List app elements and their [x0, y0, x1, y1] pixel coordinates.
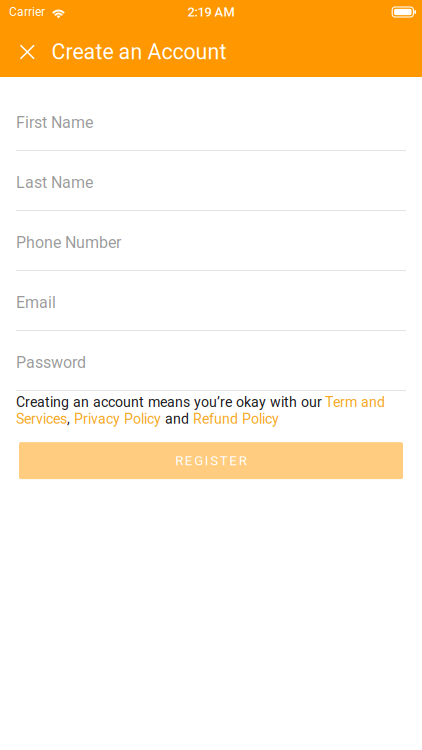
button[interactable]: Create an Account	[0, 27, 422, 77]
button[interactable]: REGISTER	[16, 442, 406, 479]
button[interactable]: Phone Number	[16, 211, 406, 271]
staticText: 2:19 AM	[187, 4, 234, 20]
staticText: REGISTER	[175, 453, 247, 468]
staticText: Password	[16, 353, 86, 372]
button[interactable]: Email	[16, 271, 406, 331]
staticText: First Name	[16, 113, 93, 132]
staticText: Phone Number	[16, 233, 121, 252]
button[interactable]: Password	[16, 331, 406, 391]
staticText: Email	[16, 293, 56, 312]
button[interactable]: Creating an account means you’re okay wi…	[16, 394, 406, 427]
staticText: Create an Account	[52, 39, 227, 64]
staticText: Last Name	[16, 173, 93, 192]
staticText: Creating an account means you’re okay wi…	[16, 394, 385, 427]
button[interactable]: Last Name	[16, 151, 406, 211]
button[interactable]: First Name	[16, 91, 406, 151]
staticText: Carrier	[9, 5, 45, 19]
